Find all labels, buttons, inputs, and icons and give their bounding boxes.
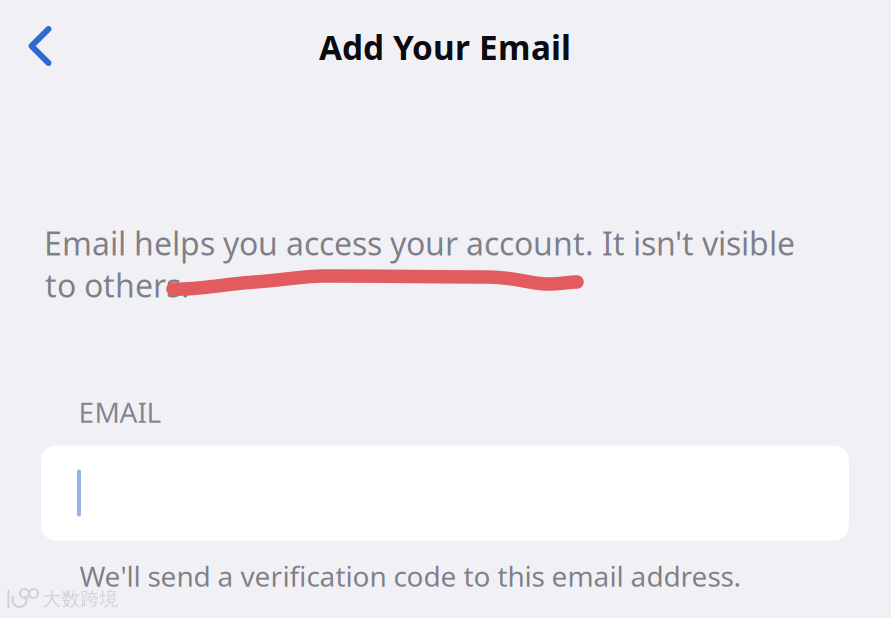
- staticText: to others.: [45, 264, 190, 306]
- button[interactable]: Back: [2, 8, 78, 84]
- staticText: Add Your Email: [319, 25, 571, 69]
- staticText: EMAIL: [78, 393, 161, 431]
- staticText: Email helps you access your account. It …: [44, 222, 795, 264]
- staticText: We'll send a verification code to this e…: [79, 557, 741, 595]
- staticText: 大数跨境: [42, 587, 118, 610]
- button[interactable]: Email: [41, 445, 849, 540]
